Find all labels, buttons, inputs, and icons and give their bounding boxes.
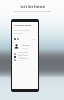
staticText: Account setup xyxy=(14,23,32,26)
button[interactable] xyxy=(14,52,36,55)
button[interactable]: Preview of the app xyxy=(11,19,39,92)
staticText: Select a profile to continue xyxy=(14,29,36,35)
button[interactable] xyxy=(14,55,36,58)
other: Profile avatar xyxy=(14,44,19,49)
staticText: Set up your account in a few simple step… xyxy=(14,10,51,13)
button[interactable]: Profile avatar xyxy=(14,44,36,49)
button[interactable] xyxy=(14,58,36,61)
staticText: Let's Get Started xyxy=(20,5,45,9)
